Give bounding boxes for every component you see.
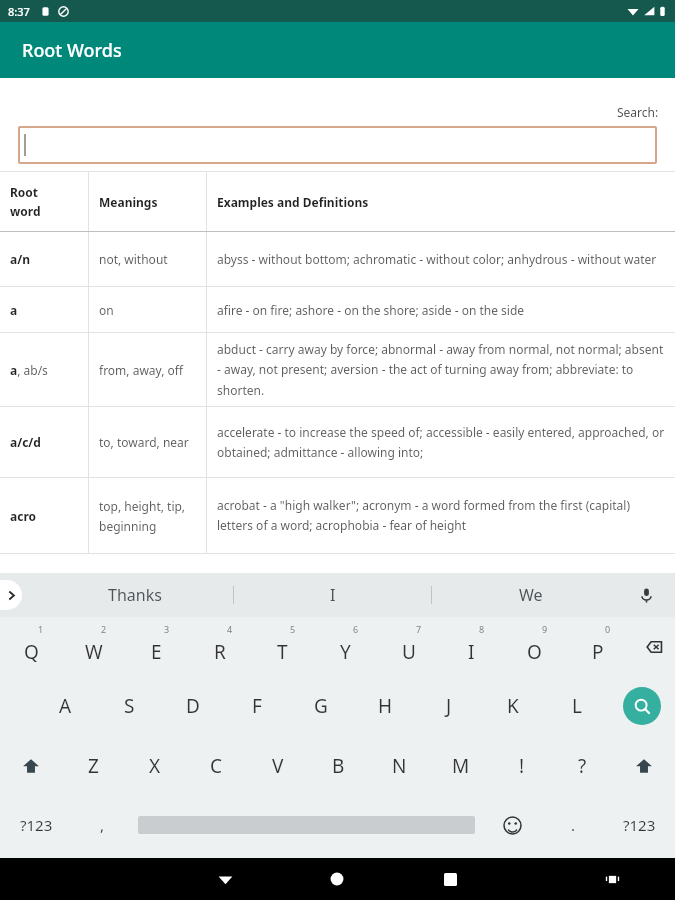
staticText: 5	[290, 623, 296, 635]
staticText: M	[452, 753, 470, 779]
staticText: P	[592, 639, 604, 665]
staticText: abduct - carry away by force; abnormal -…	[217, 341, 665, 399]
staticText: 7	[416, 623, 422, 635]
staticText: T	[277, 639, 288, 665]
staticText: L	[572, 693, 582, 719]
staticText: top, height, tip, beginning	[99, 498, 196, 534]
button[interactable]: H	[353, 676, 417, 736]
button[interactable]: L	[545, 676, 609, 736]
staticText: ?123	[20, 815, 53, 835]
button[interactable]: Home	[322, 864, 352, 894]
staticText: O	[527, 639, 542, 665]
button[interactable]: 1	[0, 617, 62, 676]
staticText: C	[210, 753, 223, 779]
button[interactable]: Shift	[0, 736, 62, 796]
staticText: ?	[578, 753, 587, 779]
button[interactable]: a	[0, 287, 675, 332]
button[interactable]: A	[33, 676, 97, 736]
button[interactable]: Z	[62, 736, 124, 796]
staticText: 8	[479, 623, 485, 635]
staticText: a, ab/s	[10, 362, 48, 378]
staticText: not, without	[99, 251, 168, 267]
staticText: .	[571, 815, 576, 835]
button[interactable]: Change keyboard	[598, 865, 626, 893]
staticText: A	[59, 693, 72, 719]
button[interactable]: Voice input	[631, 580, 661, 610]
staticText: H	[378, 693, 393, 719]
button[interactable]: K	[481, 676, 545, 736]
staticText: Examples and Definitions	[217, 194, 369, 210]
staticText: accelerate - to increase the speed of; a…	[217, 424, 665, 461]
button[interactable]: Emoji	[481, 796, 543, 854]
staticText: 8:37	[8, 4, 30, 19]
staticText: 1	[38, 623, 44, 635]
staticText: Search:	[617, 104, 659, 120]
button[interactable]: 8	[440, 617, 503, 676]
button[interactable]: C	[186, 736, 247, 796]
staticText: acro	[10, 508, 37, 524]
staticText: !	[519, 753, 525, 779]
button[interactable]	[18, 126, 657, 164]
staticText: We	[519, 584, 543, 606]
button[interactable]: 0	[566, 617, 629, 676]
button[interactable]: a/c/d	[0, 407, 675, 477]
button[interactable]: !	[491, 736, 552, 796]
staticText: Meanings	[99, 194, 158, 210]
staticText: Y	[340, 639, 351, 665]
button[interactable]: J	[417, 676, 481, 736]
button[interactable]: .	[543, 796, 603, 854]
staticText: a/c/d	[10, 434, 41, 450]
staticText: Z	[88, 753, 99, 779]
staticText: 3	[164, 623, 170, 635]
staticText: 2	[101, 623, 107, 635]
button[interactable]: 3	[125, 617, 188, 676]
button[interactable]	[132, 796, 481, 854]
button[interactable]: ,	[72, 796, 132, 854]
button[interactable]: a/n	[0, 232, 675, 286]
button[interactable]: 7	[377, 617, 440, 676]
staticText: Thanks	[108, 584, 162, 606]
button[interactable]: a, ab/s	[0, 333, 675, 406]
button[interactable]: X	[124, 736, 186, 796]
staticText: B	[332, 753, 345, 779]
button[interactable]: 9	[503, 617, 566, 676]
button[interactable]: acro	[0, 478, 675, 553]
button[interactable]: D	[161, 676, 225, 736]
staticText: U	[402, 639, 416, 665]
button[interactable]: V	[247, 736, 308, 796]
button[interactable]: B	[308, 736, 369, 796]
staticText: afire - on fire; ashore - on the shore; …	[217, 302, 525, 318]
button[interactable]: S	[97, 676, 161, 736]
button[interactable]: N	[369, 736, 430, 796]
staticText: X	[149, 753, 161, 779]
button[interactable]: G	[289, 676, 353, 736]
button[interactable]: 2	[62, 617, 125, 676]
button[interactable]: 4	[188, 617, 251, 676]
button[interactable]: ?	[552, 736, 613, 796]
button[interactable]: I	[234, 573, 431, 617]
button[interactable]: Back	[210, 864, 240, 894]
button[interactable]: ?123	[603, 796, 675, 854]
staticText: I	[330, 584, 336, 606]
button[interactable]: Thanks	[36, 573, 233, 617]
button[interactable]: We	[432, 573, 629, 617]
button[interactable]: Expand suggestions	[0, 580, 22, 610]
button[interactable]: Search	[609, 676, 675, 736]
button[interactable]: F	[225, 676, 289, 736]
staticText: G	[314, 693, 328, 719]
staticText: 0	[605, 623, 611, 635]
button[interactable]: 6	[314, 617, 377, 676]
staticText: on	[99, 302, 114, 318]
staticText: a/n	[10, 251, 30, 267]
button[interactable]: M	[430, 736, 491, 796]
staticText: a	[10, 302, 18, 318]
staticText: K	[507, 693, 519, 719]
button[interactable]: 5	[251, 617, 314, 676]
button[interactable]: Backspace	[629, 617, 675, 676]
button[interactable]: ?123	[0, 796, 72, 854]
button[interactable]: Recent apps	[435, 864, 465, 894]
staticText: to, toward, near	[99, 434, 189, 450]
staticText: 4	[227, 623, 233, 635]
button[interactable]: Shift	[613, 736, 675, 796]
staticText: F	[252, 693, 262, 719]
